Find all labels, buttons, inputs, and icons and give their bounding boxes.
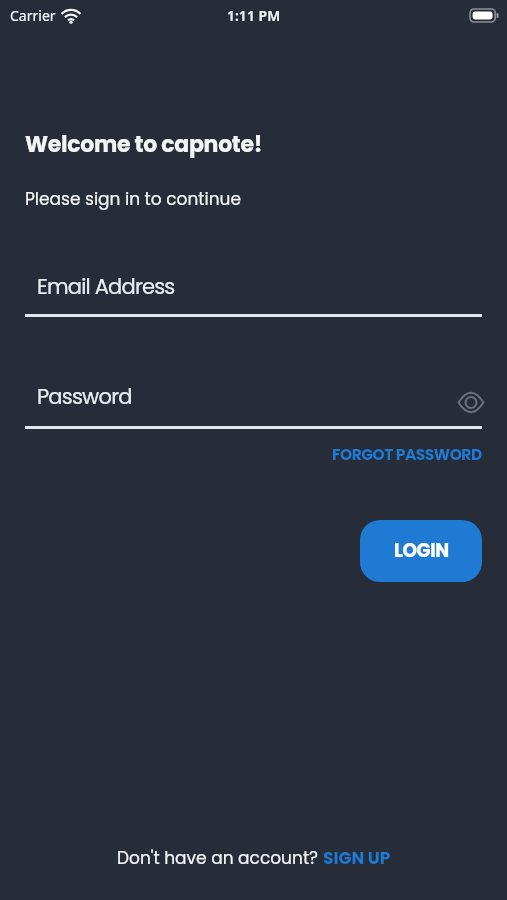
button[interactable]: LOGIN: [360, 520, 482, 582]
staticText: LOGIN: [394, 538, 449, 564]
button[interactable]: Email Address: [25, 272, 482, 317]
staticText: Carrier: [10, 6, 56, 25]
staticText: 1:11 PM: [227, 6, 281, 25]
staticText: Password: [37, 382, 456, 411]
staticText: Welcome to capnote!: [25, 129, 263, 160]
staticText: Don't have an account?: [117, 846, 323, 870]
button[interactable]: Don't have an account?: [0, 846, 507, 870]
button[interactable]: Password: [25, 382, 482, 429]
button[interactable]: FORGOT PASSWORD: [332, 444, 482, 466]
button[interactable]: [458, 392, 484, 413]
staticText: Email Address: [37, 272, 175, 301]
staticText: SIGN UP: [323, 846, 391, 870]
staticText: Please sign in to continue: [25, 187, 241, 211]
